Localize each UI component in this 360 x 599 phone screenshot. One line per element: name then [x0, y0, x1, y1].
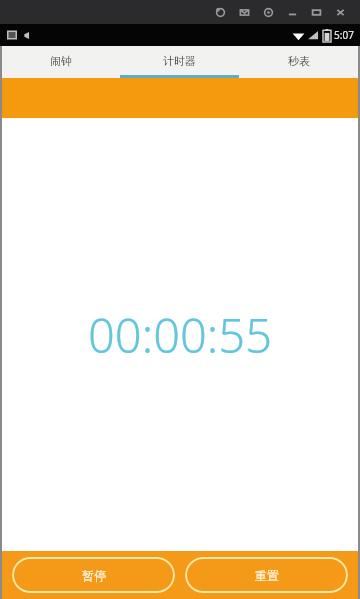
staticText: 秒表 [288, 54, 310, 68]
button[interactable]: 重置 [185, 557, 348, 593]
button[interactable]: 计时器 [120, 46, 239, 78]
button[interactable]: Messages [232, 0, 256, 24]
button[interactable]: 秒表 [239, 46, 358, 78]
staticText: 00:00:55 [88, 303, 272, 367]
button[interactable]: Close [328, 0, 352, 24]
staticText: 闹钟 [50, 54, 72, 68]
staticText: 5:07 [334, 28, 354, 42]
button[interactable]: Settings [256, 0, 280, 24]
button[interactable]: Maximize [304, 0, 328, 24]
staticText: 重置 [255, 568, 279, 583]
button[interactable]: 闹钟 [2, 46, 120, 78]
staticText: 计时器 [163, 54, 196, 68]
button[interactable]: 暂停 [12, 557, 175, 593]
staticText: 暂停 [82, 568, 106, 583]
button[interactable]: Refresh [208, 0, 232, 24]
button[interactable]: Minimize [280, 0, 304, 24]
